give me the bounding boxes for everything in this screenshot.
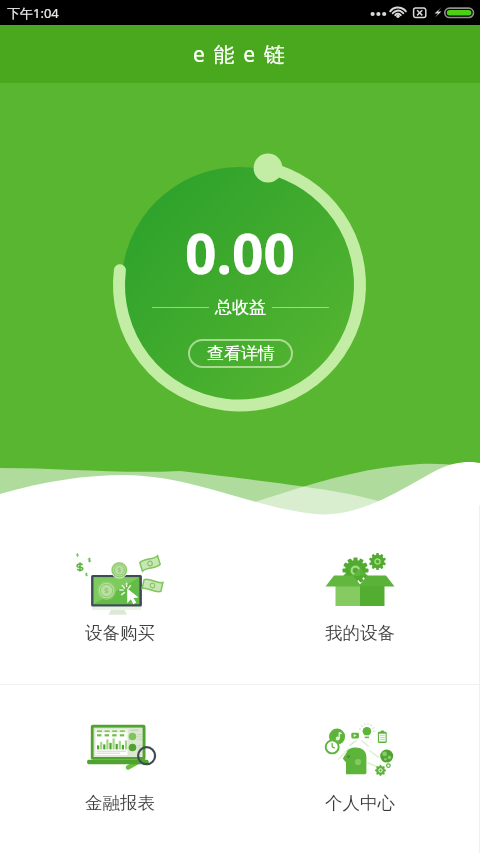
button[interactable]: 查看详情 <box>188 339 293 368</box>
staticText: e 能 e 链 <box>193 40 287 69</box>
button[interactable]: 我的设备 <box>240 505 480 684</box>
staticText: 0.00 <box>185 215 295 290</box>
staticText: 下午1:04 <box>7 4 59 22</box>
staticText: 总收益 <box>215 297 266 318</box>
staticText: 设备购买 <box>85 622 155 644</box>
staticText: 我的设备 <box>325 622 395 644</box>
button[interactable]: 个人中心 <box>240 685 480 853</box>
staticText: 个人中心 <box>325 792 395 814</box>
staticText: 查看详情 <box>207 343 275 364</box>
button[interactable]: 金融报表 <box>0 685 240 853</box>
button[interactable]: 设备购买 <box>0 505 240 684</box>
staticText: 金融报表 <box>85 792 155 814</box>
